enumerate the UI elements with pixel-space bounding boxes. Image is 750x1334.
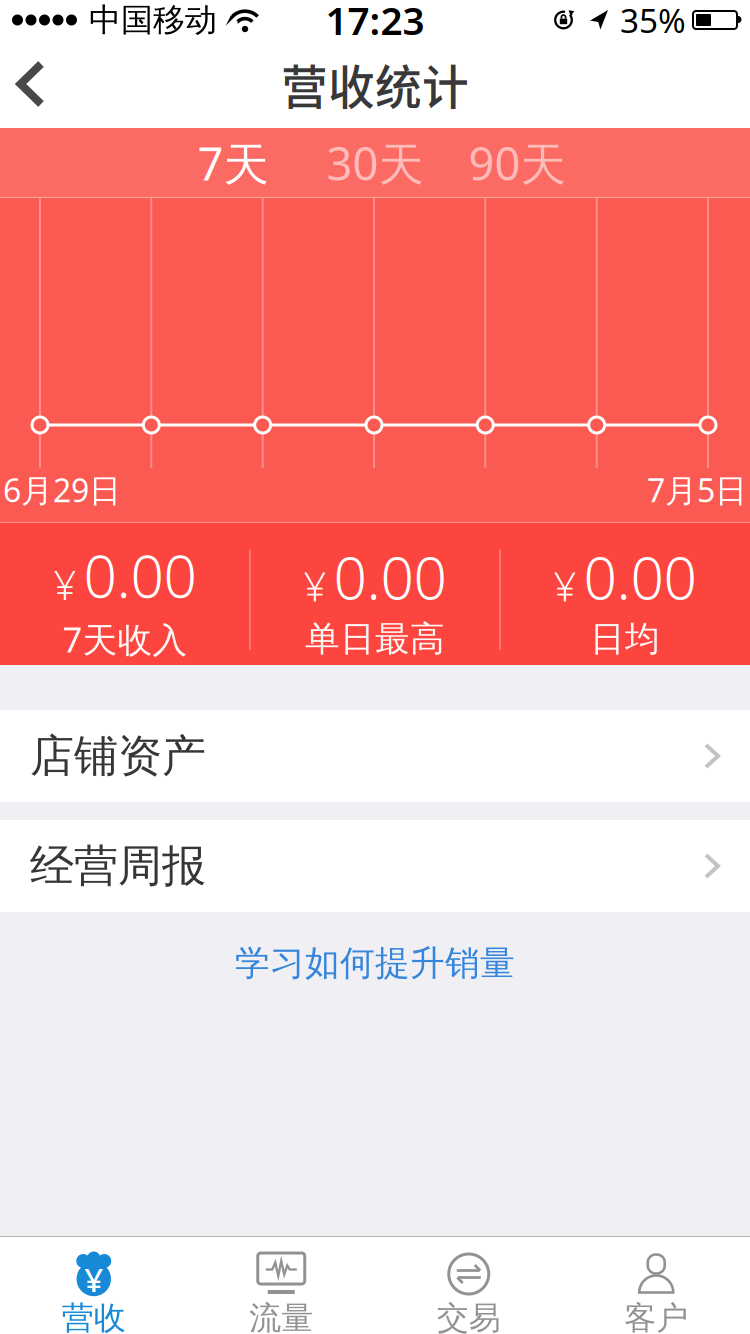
staticText: ¥ bbox=[553, 559, 576, 613]
staticText: ¥ bbox=[303, 559, 326, 613]
staticText: 6月29日 bbox=[3, 468, 121, 511]
button[interactable]: 30天 bbox=[304, 128, 446, 198]
staticText: 7天 bbox=[197, 133, 268, 193]
staticText: 店铺资产 bbox=[30, 729, 206, 783]
staticText: 0.00 bbox=[583, 538, 696, 616]
button[interactable]: Back bbox=[0, 43, 46, 125]
staticText: 客户 bbox=[624, 1298, 688, 1334]
button[interactable]: 客户 bbox=[562, 1237, 750, 1334]
staticText: 90天 bbox=[468, 133, 565, 193]
button[interactable]: 经营周报 bbox=[0, 820, 750, 912]
button[interactable]: 7天 bbox=[162, 128, 304, 198]
staticText: 17:23 bbox=[325, 0, 424, 46]
staticText: 单日最高 bbox=[305, 618, 445, 660]
staticText: 经营周报 bbox=[30, 839, 206, 893]
staticText: 交易 bbox=[437, 1298, 501, 1334]
staticText: 流量 bbox=[249, 1298, 313, 1334]
staticText: 7月5日 bbox=[647, 468, 747, 511]
staticText: 营收统计 bbox=[281, 50, 469, 118]
button[interactable]: 店铺资产 bbox=[0, 710, 750, 802]
staticText: 35% bbox=[620, 0, 686, 42]
button[interactable]: 学习如何提升销量 bbox=[235, 912, 515, 985]
staticText: ¥ bbox=[53, 558, 76, 611]
staticText: ¥ bbox=[84, 1257, 103, 1301]
button[interactable]: 90天 bbox=[446, 128, 588, 198]
staticText: 0.00 bbox=[83, 536, 196, 614]
button[interactable]: ¥ bbox=[0, 1237, 187, 1334]
button[interactable]: 流量 bbox=[187, 1237, 375, 1334]
staticText: 日均 bbox=[590, 618, 660, 660]
staticText: 学习如何提升销量 bbox=[235, 942, 515, 985]
button[interactable]: 交易 bbox=[375, 1237, 562, 1334]
staticText: 30天 bbox=[326, 133, 423, 193]
staticText: 中国移动 bbox=[89, 0, 217, 40]
staticText: 7天收入 bbox=[62, 616, 187, 662]
staticText: 营收 bbox=[62, 1298, 126, 1334]
staticText: 0.00 bbox=[333, 538, 446, 616]
